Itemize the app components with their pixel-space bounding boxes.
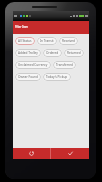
staticText: In Transit (40, 39, 54, 43)
staticText: Filter Item (15, 25, 28, 29)
staticText: Received (62, 39, 75, 43)
button[interactable]: Returned (64, 49, 84, 57)
staticText: All Status (18, 39, 32, 43)
staticText: Returned (67, 51, 81, 55)
staticText: Today's Pickup (46, 75, 68, 79)
button[interactable]: Transferred (53, 61, 76, 69)
button[interactable]: Unclaimed Currency (15, 61, 51, 69)
button[interactable]: Ordered (43, 49, 62, 57)
staticText: Ordered (46, 51, 59, 55)
button[interactable]: Added Trolley (15, 49, 41, 57)
staticText: Added Trolley (18, 51, 38, 55)
button[interactable]: In Transit (37, 37, 57, 45)
button[interactable]: Today's Pickup (43, 73, 71, 81)
button[interactable]: Reset filters (13, 148, 50, 159)
button[interactable]: Apply filters (51, 148, 89, 159)
staticText: Transferred (56, 63, 73, 67)
button[interactable]: Owner Found (15, 73, 41, 81)
staticText: Unclaimed Currency (18, 63, 48, 67)
button[interactable]: All Status (15, 37, 35, 45)
staticText: Owner Found (18, 75, 38, 79)
button[interactable]: Received (59, 37, 78, 45)
